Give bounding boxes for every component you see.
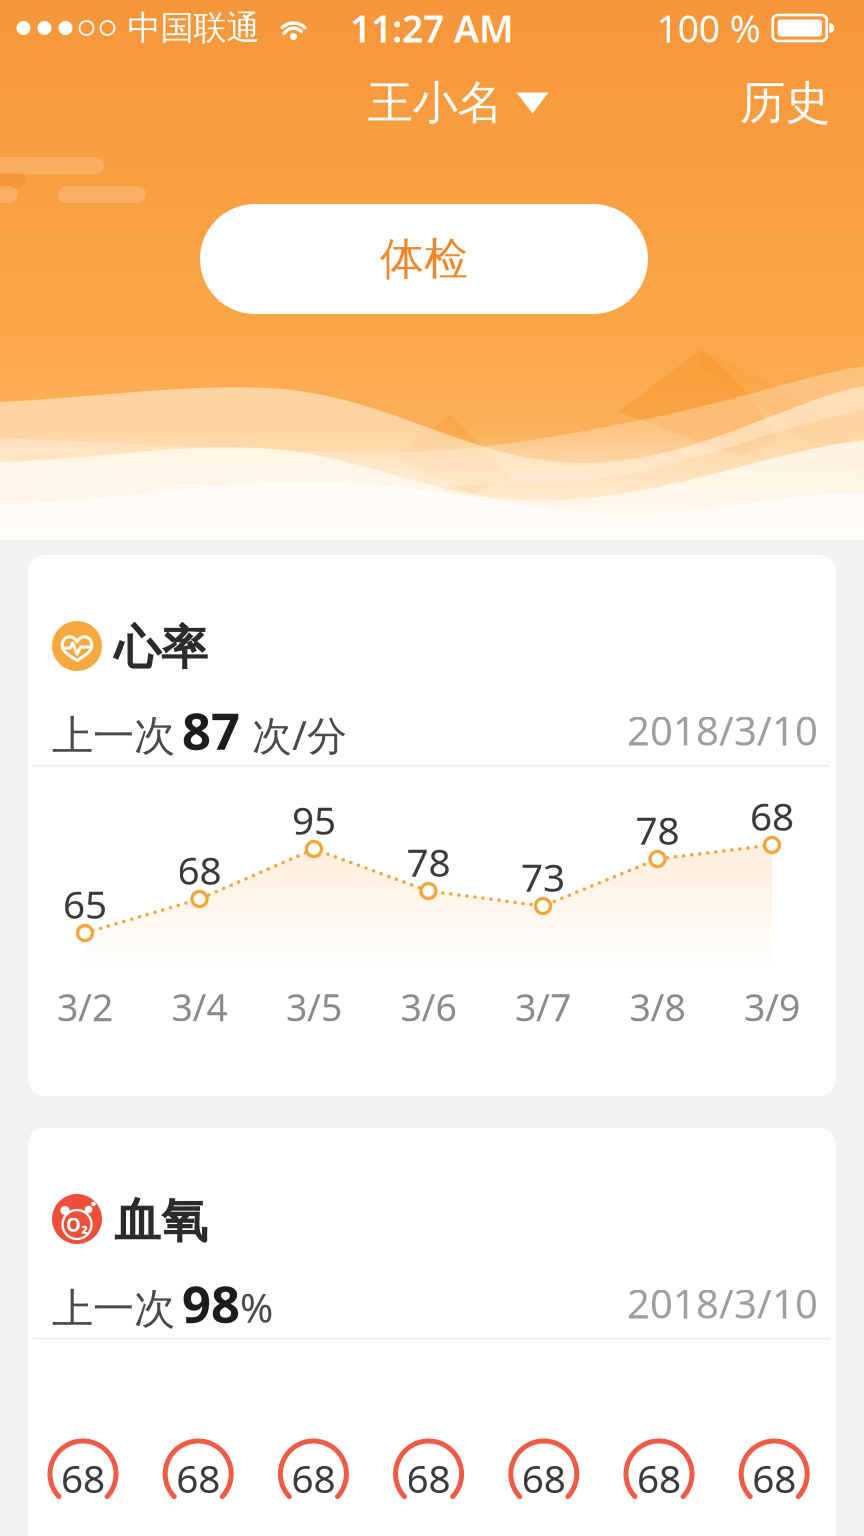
button[interactable]: 切换用户 王小名 <box>355 64 560 142</box>
staticText: 中国联通 <box>127 7 259 48</box>
staticText: 68 <box>750 790 794 841</box>
staticText: 王小名 <box>367 75 502 131</box>
staticText: 78 <box>635 804 679 855</box>
staticText: 65 <box>63 878 107 929</box>
staticText: 2018/3/10 <box>627 1276 818 1329</box>
staticText: 历史 <box>740 75 830 131</box>
staticText: 3/9 <box>744 982 800 1032</box>
staticText: 2018/3/10 <box>627 703 818 756</box>
staticText: 68 <box>291 1452 335 1504</box>
staticText: 3/7 <box>515 982 571 1032</box>
staticText: 68 <box>177 844 221 895</box>
button[interactable]: 血氧 上一次 98% <box>28 1128 836 1536</box>
staticText: 68 <box>407 1452 451 1504</box>
staticText: 68 <box>522 1452 566 1504</box>
button[interactable]: 体检 <box>200 204 648 314</box>
staticText: 血氧 <box>114 1192 208 1250</box>
staticText: 上一次 <box>52 1283 175 1334</box>
staticText: 68 <box>637 1452 681 1504</box>
staticText: 体检 <box>380 232 468 286</box>
staticText: 68 <box>752 1452 796 1504</box>
staticText: 78 <box>406 836 450 887</box>
staticText: O₂ <box>66 1212 88 1237</box>
button[interactable]: 历史 <box>724 64 846 142</box>
staticText: 3/5 <box>286 982 342 1032</box>
staticText: 次/分 <box>240 708 347 761</box>
staticText: 11:27 AM <box>350 3 514 53</box>
staticText: 上一次 <box>52 710 175 761</box>
staticText: 3/6 <box>400 982 456 1032</box>
staticText: 95 <box>292 794 336 845</box>
staticText: 68 <box>176 1452 220 1504</box>
staticText: 3/4 <box>171 982 227 1032</box>
staticText: 98 <box>182 1269 240 1337</box>
staticText: 3/8 <box>629 982 685 1032</box>
staticText: 3/2 <box>57 982 113 1032</box>
button[interactable]: 心率 上一次 87 次/分 <box>28 555 836 1096</box>
staticText: 73 <box>521 851 565 902</box>
staticText: 68 <box>61 1452 105 1504</box>
staticText: 100 % <box>657 3 761 53</box>
staticText: 87 <box>182 696 240 764</box>
staticText: 心率 <box>114 619 208 677</box>
staticText: % <box>240 1281 273 1334</box>
